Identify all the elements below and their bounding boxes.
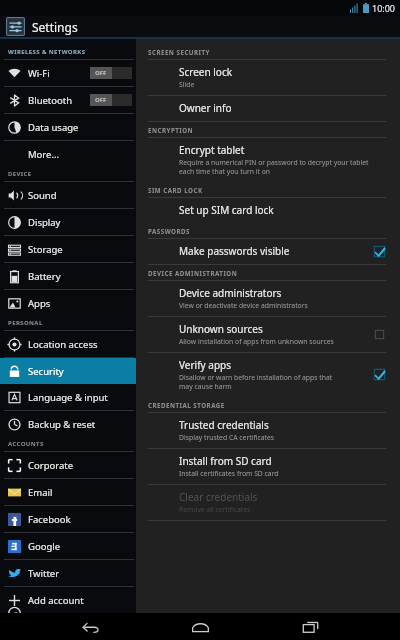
staticText: Display [28,216,61,229]
staticText: Data usage [28,121,79,134]
button[interactable]: email [0,479,136,505]
button[interactable]: battery [0,263,136,289]
staticText: Set up SIM card lock [179,203,274,217]
staticText: Install certificates from SD card [179,469,279,478]
staticText: OFF [95,69,107,77]
staticText: SIM CARD LOCK [148,186,203,194]
button[interactable]: Screen lock [136,60,400,95]
staticText: DEVICE ADMINISTRATION [148,269,238,277]
button[interactable]: Toggle Make passwords visible [373,245,386,258]
other: battery [8,270,21,283]
staticText: Email [28,486,53,499]
staticText: Apps [28,297,51,310]
staticText: Allow installation of apps from unknown … [179,337,334,346]
button[interactable]: Owner info [136,96,400,121]
staticText: Add account [28,594,84,607]
staticText: 10:00 [372,2,396,14]
staticText: Disallow or warn before installation of … [179,373,333,391]
staticText: Device administrators [179,286,282,300]
button[interactable]: Toggle Unknown sources [373,328,386,341]
button[interactable]: Trusted credentials [136,413,400,448]
other: email [8,486,21,499]
other: wifi [8,67,21,80]
button[interactable]: sound [0,182,136,208]
staticText: Sound [28,189,57,202]
button[interactable]: Recent apps [290,615,330,639]
staticText: ACCOUNTS [8,440,44,448]
staticText: Remove all certificates [179,505,251,514]
button[interactable]: fb [0,506,136,532]
other: lock [8,365,21,378]
staticText: Verify apps [179,358,231,372]
staticText: Security [28,365,64,378]
button[interactable]: apps [0,290,136,316]
staticText: Corporate [28,459,74,472]
staticText: Language & input [28,391,108,404]
other: storage [8,243,21,256]
staticText: WIRELESS & NETWORKS [8,48,86,56]
button[interactable]: More... [0,141,136,167]
staticText: Encrypt tablet [179,143,245,157]
button[interactable]: Home [180,615,220,639]
staticText: Install from SD card [179,454,272,468]
other: bt [8,94,21,107]
other: lang [8,391,21,404]
button[interactable]: Toggle Verify apps [373,368,386,381]
other: goog [8,540,21,553]
button[interactable]: plus [0,587,136,613]
staticText: CREDENTIAL STORAGE [148,401,225,409]
staticText: Google [28,540,61,553]
staticText: DEVICE [8,170,32,178]
staticText: Backup & reset [28,418,96,431]
staticText: Facebook [28,513,71,526]
button[interactable]: Unknown sources [136,317,400,352]
button[interactable]: lock [0,358,136,384]
staticText: PASSWORDS [148,227,190,235]
button[interactable]: tw [0,560,136,586]
staticText: Bluetooth [28,94,73,107]
button[interactable]: Install from SD card [136,449,400,484]
button[interactable]: OFF [90,67,132,79]
staticText: Screen lock [179,65,233,79]
staticText: ENCRYPTION [148,126,194,134]
other: plus [8,594,21,607]
button[interactable]: corp [0,452,136,478]
button[interactable]: storage [0,236,136,262]
button[interactable]: display [0,209,136,235]
staticText: View or deactivate device administrators [179,301,308,310]
staticText: Location access [28,338,98,351]
button[interactable]: goog [0,533,136,559]
button[interactable]: bt [0,87,136,113]
button[interactable]: Verify apps [136,353,400,397]
other: loc [8,338,21,351]
other: fb [8,513,21,526]
staticText: Display trusted CA certificates [179,433,275,442]
other: backup [8,418,21,431]
other: display [8,216,21,229]
button[interactable]: Device administrators [136,281,400,316]
staticText: Battery [28,270,61,283]
button[interactable]: OFF [90,94,132,106]
button[interactable]: Make passwords visible [136,239,400,264]
staticText: Twitter [28,567,60,580]
button[interactable]: lang [0,384,136,410]
staticText: Trusted credentials [179,418,269,432]
staticText: Make passwords visible [179,244,290,258]
staticText: Wi-Fi [28,67,50,80]
other: tw [8,567,21,580]
staticText: Slide [179,80,195,89]
button[interactable]: backup [0,411,136,437]
button[interactable]: loc [0,331,136,357]
staticText: More... [28,148,60,161]
other: data [8,121,21,134]
button[interactable]: Encrypt tablet [136,138,400,182]
button[interactable]: wifi [0,60,136,86]
button[interactable]: Set up SIM card lock [136,198,400,223]
staticText: Owner info [179,101,232,115]
other: apps [8,297,21,310]
button[interactable]: Clear credentials [136,485,400,520]
button[interactable]: data [0,114,136,140]
staticText: Require a numerical PIN or password to d… [179,158,369,176]
staticText: PERSONAL [8,319,43,327]
button[interactable]: Back [70,615,110,639]
